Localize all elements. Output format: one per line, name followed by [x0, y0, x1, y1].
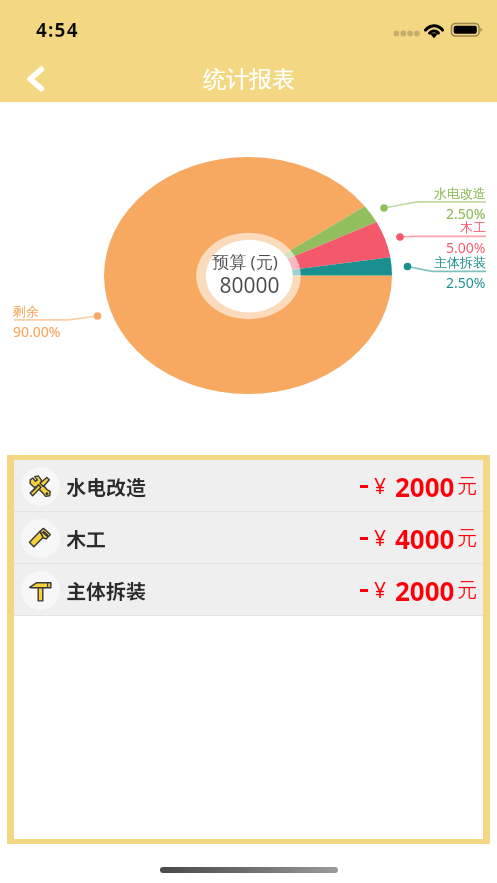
button[interactable]: 水电改造	[14, 460, 483, 512]
button[interactable]: 木工	[14, 512, 483, 564]
staticText: 80000	[219, 271, 280, 300]
staticText: 5.00%	[446, 238, 486, 257]
staticText: 2.50%	[446, 204, 486, 223]
staticText: 元	[457, 578, 477, 603]
staticText: 统计报表	[203, 65, 295, 94]
staticText: 木工	[460, 219, 486, 235]
staticText: 主体拆装	[434, 254, 486, 270]
staticText: 预算 (元)	[212, 250, 278, 273]
staticText: 2000	[395, 469, 455, 504]
staticText: 2000	[395, 573, 455, 608]
staticText: 4:54	[36, 17, 79, 43]
staticText: 90.00%	[13, 322, 61, 341]
staticText: 木工	[66, 524, 106, 553]
staticText: ¥	[374, 524, 387, 553]
staticText: ¥	[374, 576, 387, 605]
staticText: 元	[457, 526, 477, 551]
staticText: 4000	[395, 521, 455, 556]
staticText: 水电改造	[66, 472, 146, 501]
staticText: 剩余	[13, 303, 39, 319]
staticText: ¥	[374, 472, 387, 501]
button[interactable]: Back	[12, 55, 59, 102]
staticText: 元	[457, 474, 477, 499]
button[interactable]: 主体拆装	[14, 564, 483, 616]
staticText: 水电改造	[434, 185, 486, 201]
staticText: 2.50%	[446, 273, 486, 292]
staticText: 主体拆装	[66, 576, 146, 605]
